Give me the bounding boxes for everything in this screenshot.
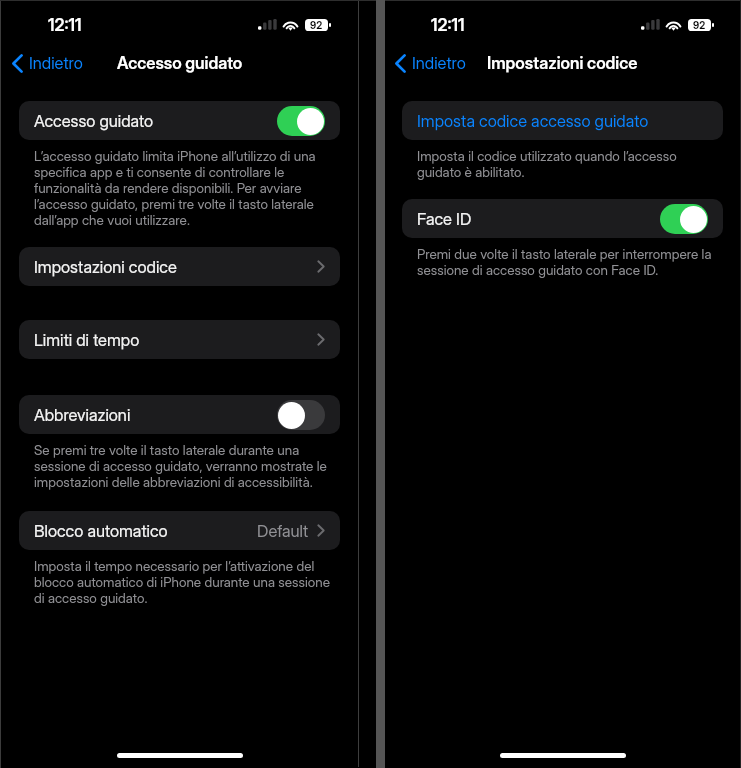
button[interactable]: Limiti di tempo [19,320,340,359]
other: Wi-Fi [665,18,682,31]
button[interactable]: Attiva [277,400,325,430]
staticText: Imposta il tempo necessario per l’attiva… [34,559,335,607]
button[interactable]: Accesso guidato [19,101,340,140]
staticText: Imposta codice accesso guidato [417,111,649,131]
staticText: Face ID [417,209,472,229]
staticText: Blocco automatico [34,521,168,541]
staticText: Default [257,521,309,541]
button[interactable]: Indietro [2,45,93,81]
staticText: L’accesso guidato limita iPhone all’util… [34,149,335,229]
staticText: Impostazioni codice [34,257,177,277]
staticText: Limiti di tempo [34,330,140,350]
button[interactable]: Impostazioni codice [19,247,340,286]
staticText: Impostazioni codice [487,53,638,73]
staticText: Se premi tre volte il tasto laterale dur… [34,443,335,491]
staticText: Indietro [412,53,466,73]
other: Batteria 92 percento [305,19,328,31]
other: Segnale cellulare [258,17,278,31]
button[interactable]: Disattiva [660,204,708,234]
staticText: Imposta il codice utilizzato quando l’ac… [417,149,718,181]
button[interactable]: Indietro [385,45,476,81]
staticText: Accesso guidato [34,111,154,131]
button[interactable]: Abbreviazioni [19,395,340,434]
staticText: Indietro [29,53,83,73]
staticText: Premi due volte il tasto laterale per in… [417,247,718,279]
staticText: 92 [310,19,323,31]
other: Segnale cellulare [641,17,661,31]
staticText: 12:11 [48,15,82,36]
button[interactable]: Imposta codice accesso guidato [402,101,723,140]
other: Wi-Fi [282,18,299,31]
staticText: 92 [693,19,706,31]
staticText: Abbreviazioni [34,405,131,425]
button[interactable]: Disattiva [277,106,325,136]
staticText: Accesso guidato [117,53,243,73]
button[interactable]: Blocco automatico [19,511,340,550]
other: Batteria 92 percento [688,19,711,31]
button[interactable]: Face ID [402,199,723,238]
staticText: 12:11 [431,15,465,36]
